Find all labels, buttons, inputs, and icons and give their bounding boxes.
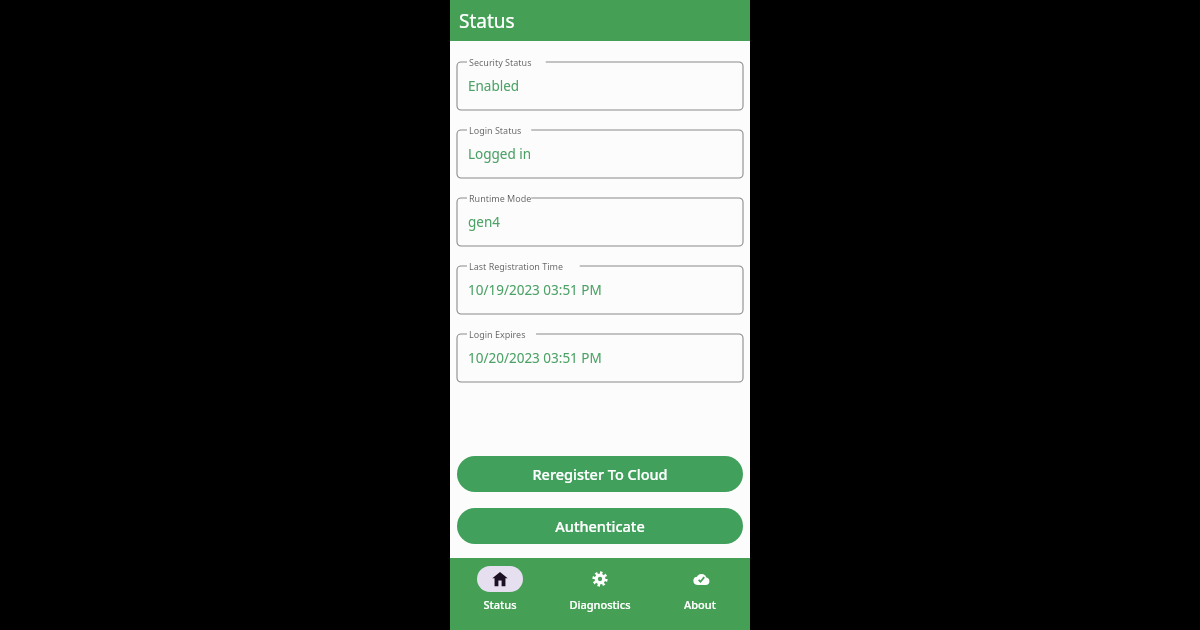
staticText: Diagnostics [569, 597, 631, 612]
button[interactable]: Diagnostics [550, 558, 650, 630]
button[interactable]: About [650, 558, 750, 630]
button[interactable]: Status [450, 558, 550, 630]
button[interactable]: Authenticate [457, 508, 743, 544]
staticText: Status [459, 8, 515, 34]
staticText: gen4 [468, 213, 500, 231]
staticText: Last Registration Time [469, 260, 564, 272]
staticText: Runtime Mode [469, 192, 532, 204]
staticText: Security Status [469, 56, 532, 68]
staticText: About [684, 597, 716, 612]
staticText: Reregister To Cloud [532, 464, 668, 484]
staticText: Authenticate [555, 516, 645, 536]
staticText: 10/19/2023 03:51 PM [468, 281, 602, 299]
staticText: Status [483, 597, 517, 612]
button[interactable]: Reregister To Cloud [457, 456, 743, 492]
staticText: 10/20/2023 03:51 PM [468, 349, 602, 367]
staticText: Login Expires [469, 328, 526, 340]
staticText: Login Status [469, 124, 522, 136]
staticText: Logged in [468, 145, 532, 163]
staticText: Enabled [468, 77, 520, 95]
